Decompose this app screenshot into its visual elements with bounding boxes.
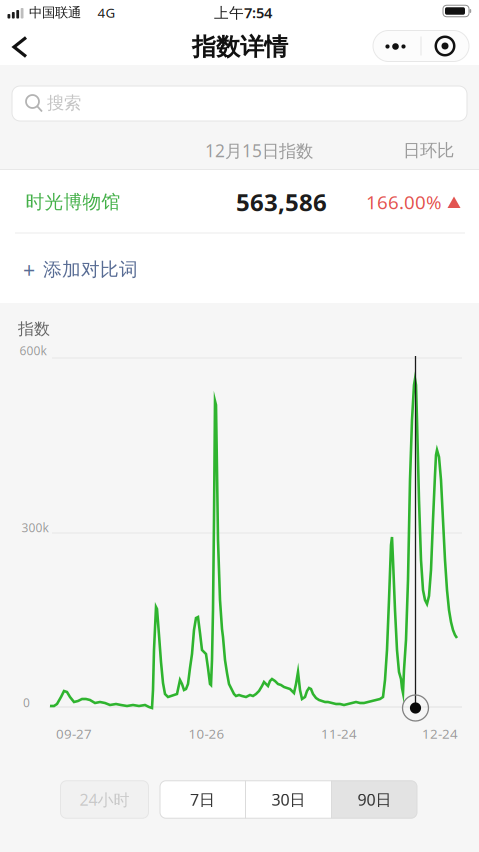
staticText: 指数详情 xyxy=(192,32,288,62)
staticText: 12月15日指数 xyxy=(205,139,313,162)
staticText: 24小时 xyxy=(79,789,129,810)
staticText: 10-26 xyxy=(188,725,224,742)
button[interactable]: Back xyxy=(3,30,37,64)
staticText: 300k xyxy=(21,519,48,535)
button[interactable]: + xyxy=(0,235,180,303)
staticText: 30日 xyxy=(271,789,305,810)
staticText: 日环比 xyxy=(403,140,454,161)
staticText: 563,586 xyxy=(236,186,327,218)
button[interactable]: 30日 xyxy=(246,781,331,818)
staticText: 中国联通 xyxy=(29,4,81,21)
staticText: 90日 xyxy=(357,789,391,810)
staticText: 600k xyxy=(19,342,46,358)
staticText: 上午7:54 xyxy=(214,3,272,22)
staticText: 时光博物馆 xyxy=(25,190,120,213)
staticText: 搜索 xyxy=(47,92,81,114)
button[interactable]: 时光博物馆 xyxy=(0,170,479,233)
button[interactable]: 24小时 xyxy=(60,781,148,818)
button[interactable]: More xyxy=(372,31,418,62)
button[interactable]: 搜索 xyxy=(12,86,467,121)
staticText: 添加对比词 xyxy=(43,258,138,281)
staticText: 0 xyxy=(23,694,30,710)
button[interactable]: 90日 xyxy=(332,781,417,818)
staticText: 12-24 xyxy=(422,725,458,742)
staticText: 166.00% xyxy=(366,190,442,214)
staticText: 指数 xyxy=(18,319,50,339)
staticText: + xyxy=(23,255,35,284)
staticText: 4G xyxy=(97,4,115,21)
staticText: 7日 xyxy=(190,789,215,810)
staticText: 11-24 xyxy=(321,725,357,742)
staticText: 09-27 xyxy=(56,725,92,742)
button[interactable]: 7日 xyxy=(160,781,245,818)
button[interactable]: Home xyxy=(423,30,467,61)
